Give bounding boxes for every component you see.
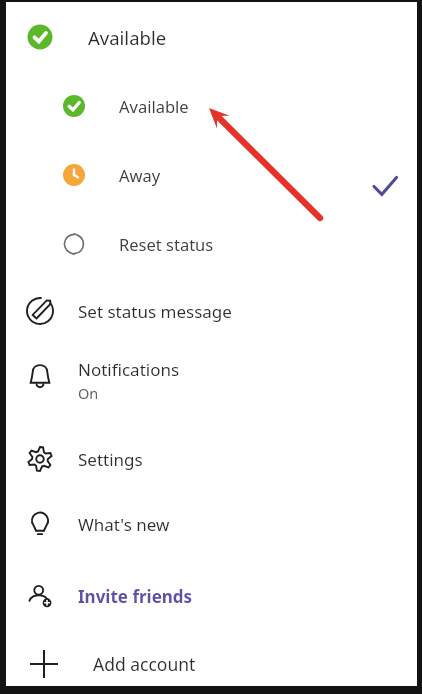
staticText: Add account	[93, 652, 196, 676]
button[interactable]: Available	[6, 85, 417, 127]
staticText: Available	[88, 25, 167, 50]
button[interactable]: Notifications	[6, 354, 417, 406]
staticText: What's new	[78, 513, 170, 536]
button[interactable]: Away	[6, 154, 417, 196]
button[interactable]: Add account	[6, 643, 417, 685]
staticText: Notifications	[78, 358, 180, 381]
staticText: Away	[119, 164, 161, 186]
button[interactable]: Reset status	[6, 223, 417, 265]
button[interactable]: Invite friends	[6, 575, 417, 617]
button[interactable]: What's new	[6, 503, 417, 545]
staticText: Set status message	[78, 300, 232, 323]
staticText: Reset status	[119, 233, 214, 255]
button[interactable]: Available	[6, 16, 417, 58]
button[interactable]: Settings	[6, 438, 417, 480]
staticText: On	[78, 383, 99, 403]
staticText: Available	[119, 95, 189, 117]
staticText: Invite friends	[78, 585, 193, 608]
button[interactable]: Set status message	[6, 290, 417, 332]
staticText: Settings	[78, 448, 143, 471]
